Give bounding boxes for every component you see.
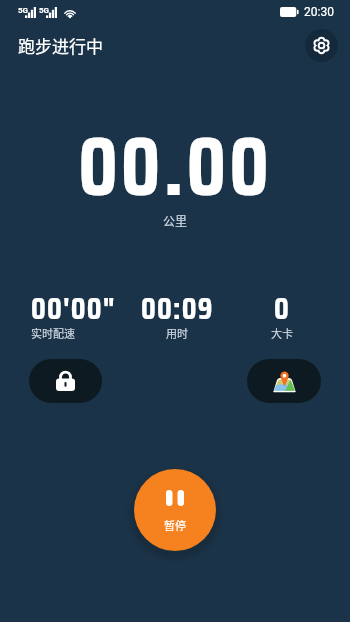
staticText: 00.00 — [78, 101, 272, 197]
staticText: 公里 — [163, 212, 188, 228]
button[interactable]: Lock screen — [29, 359, 102, 403]
staticText: 5G — [18, 6, 29, 15]
staticText: 用时 — [166, 325, 188, 341]
staticText: 实时配速 — [31, 325, 75, 341]
staticText: 00'00" — [31, 284, 116, 333]
staticText: 跑步进行中 — [18, 33, 103, 58]
staticText: 暂停 — [164, 517, 186, 533]
staticText: 20:30 — [304, 5, 334, 19]
button[interactable]: Show map — [247, 359, 321, 403]
button[interactable]: Settings — [305, 29, 338, 62]
staticText: 5G — [39, 6, 50, 15]
staticText: 大卡 — [271, 325, 293, 341]
button[interactable]: 暂停 — [134, 469, 216, 551]
staticText: 0 — [274, 284, 290, 333]
staticText: 00:09 — [141, 284, 214, 333]
